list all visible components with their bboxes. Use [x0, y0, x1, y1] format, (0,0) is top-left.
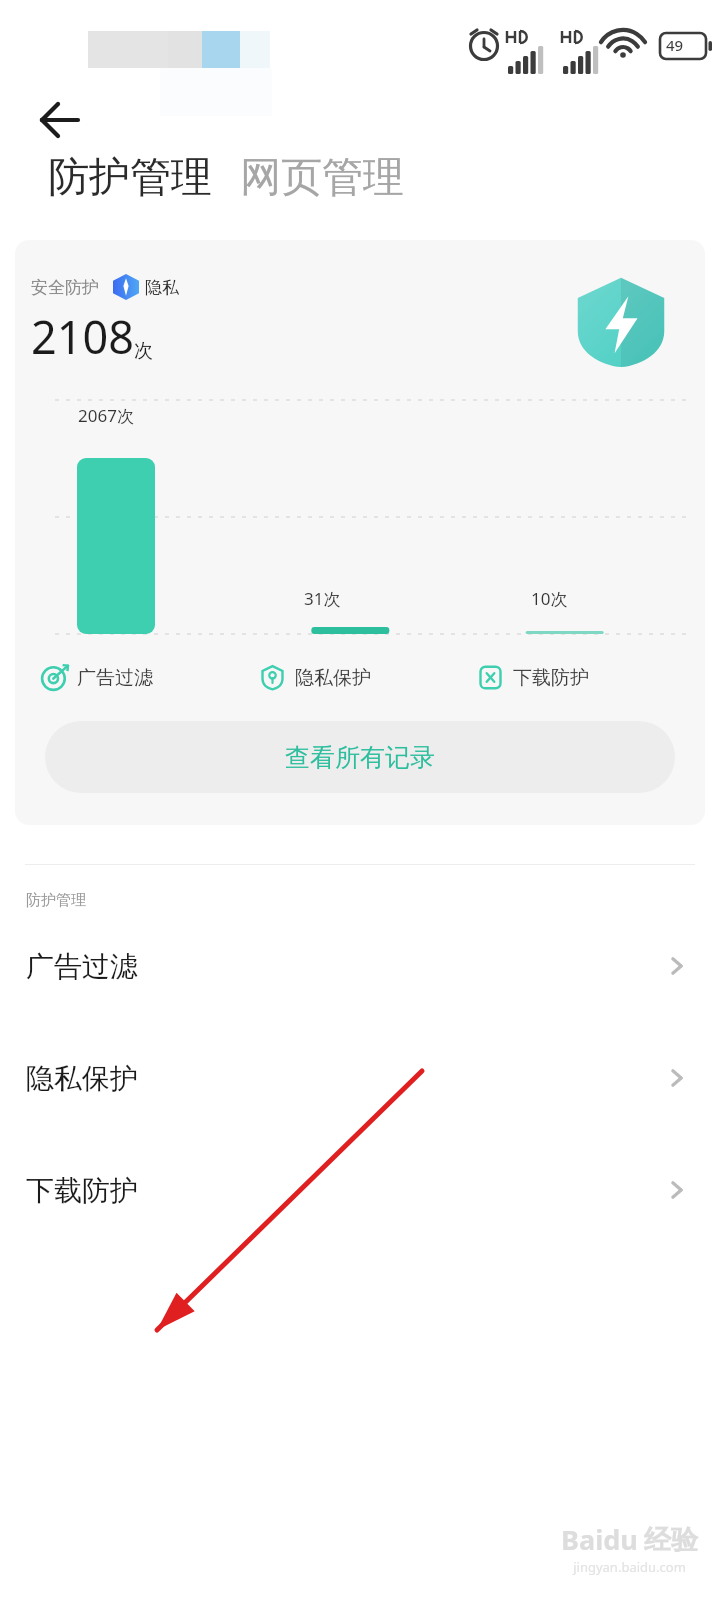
staticText: 10次: [531, 587, 568, 610]
staticText: Baidu: [561, 1521, 638, 1558]
button[interactable]: 防护管理: [48, 152, 212, 204]
staticText: 安全防护: [31, 277, 99, 298]
button[interactable]: 网页管理: [240, 152, 404, 204]
staticText: 广告过滤: [26, 949, 664, 984]
button[interactable]: 广告过滤: [0, 936, 720, 996]
button[interactable]: 隐私保护: [259, 664, 477, 691]
staticText: 广告过滤: [77, 666, 153, 690]
staticText: 31次: [304, 587, 341, 610]
staticText: 49: [666, 35, 684, 55]
staticText: 隐私保护: [26, 1061, 664, 1096]
staticText: 2067次: [78, 404, 134, 427]
button[interactable]: 查看所有记录: [45, 721, 675, 793]
staticText: 网页管理: [240, 152, 404, 204]
staticText: 2108: [31, 306, 134, 367]
button[interactable]: 广告过滤: [41, 664, 259, 691]
staticText: 查看所有记录: [285, 742, 435, 773]
staticText: jingyan.baidu.com: [573, 1558, 686, 1576]
staticText: 隐私: [145, 277, 179, 298]
staticText: 下载防护: [26, 1173, 664, 1208]
staticText: 下载防护: [513, 666, 589, 690]
staticText: 防护管理: [48, 152, 212, 204]
button[interactable]: 下载防护: [0, 1160, 720, 1220]
staticText: 隐私保护: [295, 666, 371, 690]
button[interactable]: 隐私保护: [0, 1048, 720, 1108]
staticText: 次: [134, 339, 153, 363]
button[interactable]: 下载防护: [477, 664, 695, 691]
staticText: 防护管理: [26, 891, 86, 910]
button[interactable]: Back: [36, 96, 84, 144]
staticText: 经验: [644, 1523, 698, 1557]
